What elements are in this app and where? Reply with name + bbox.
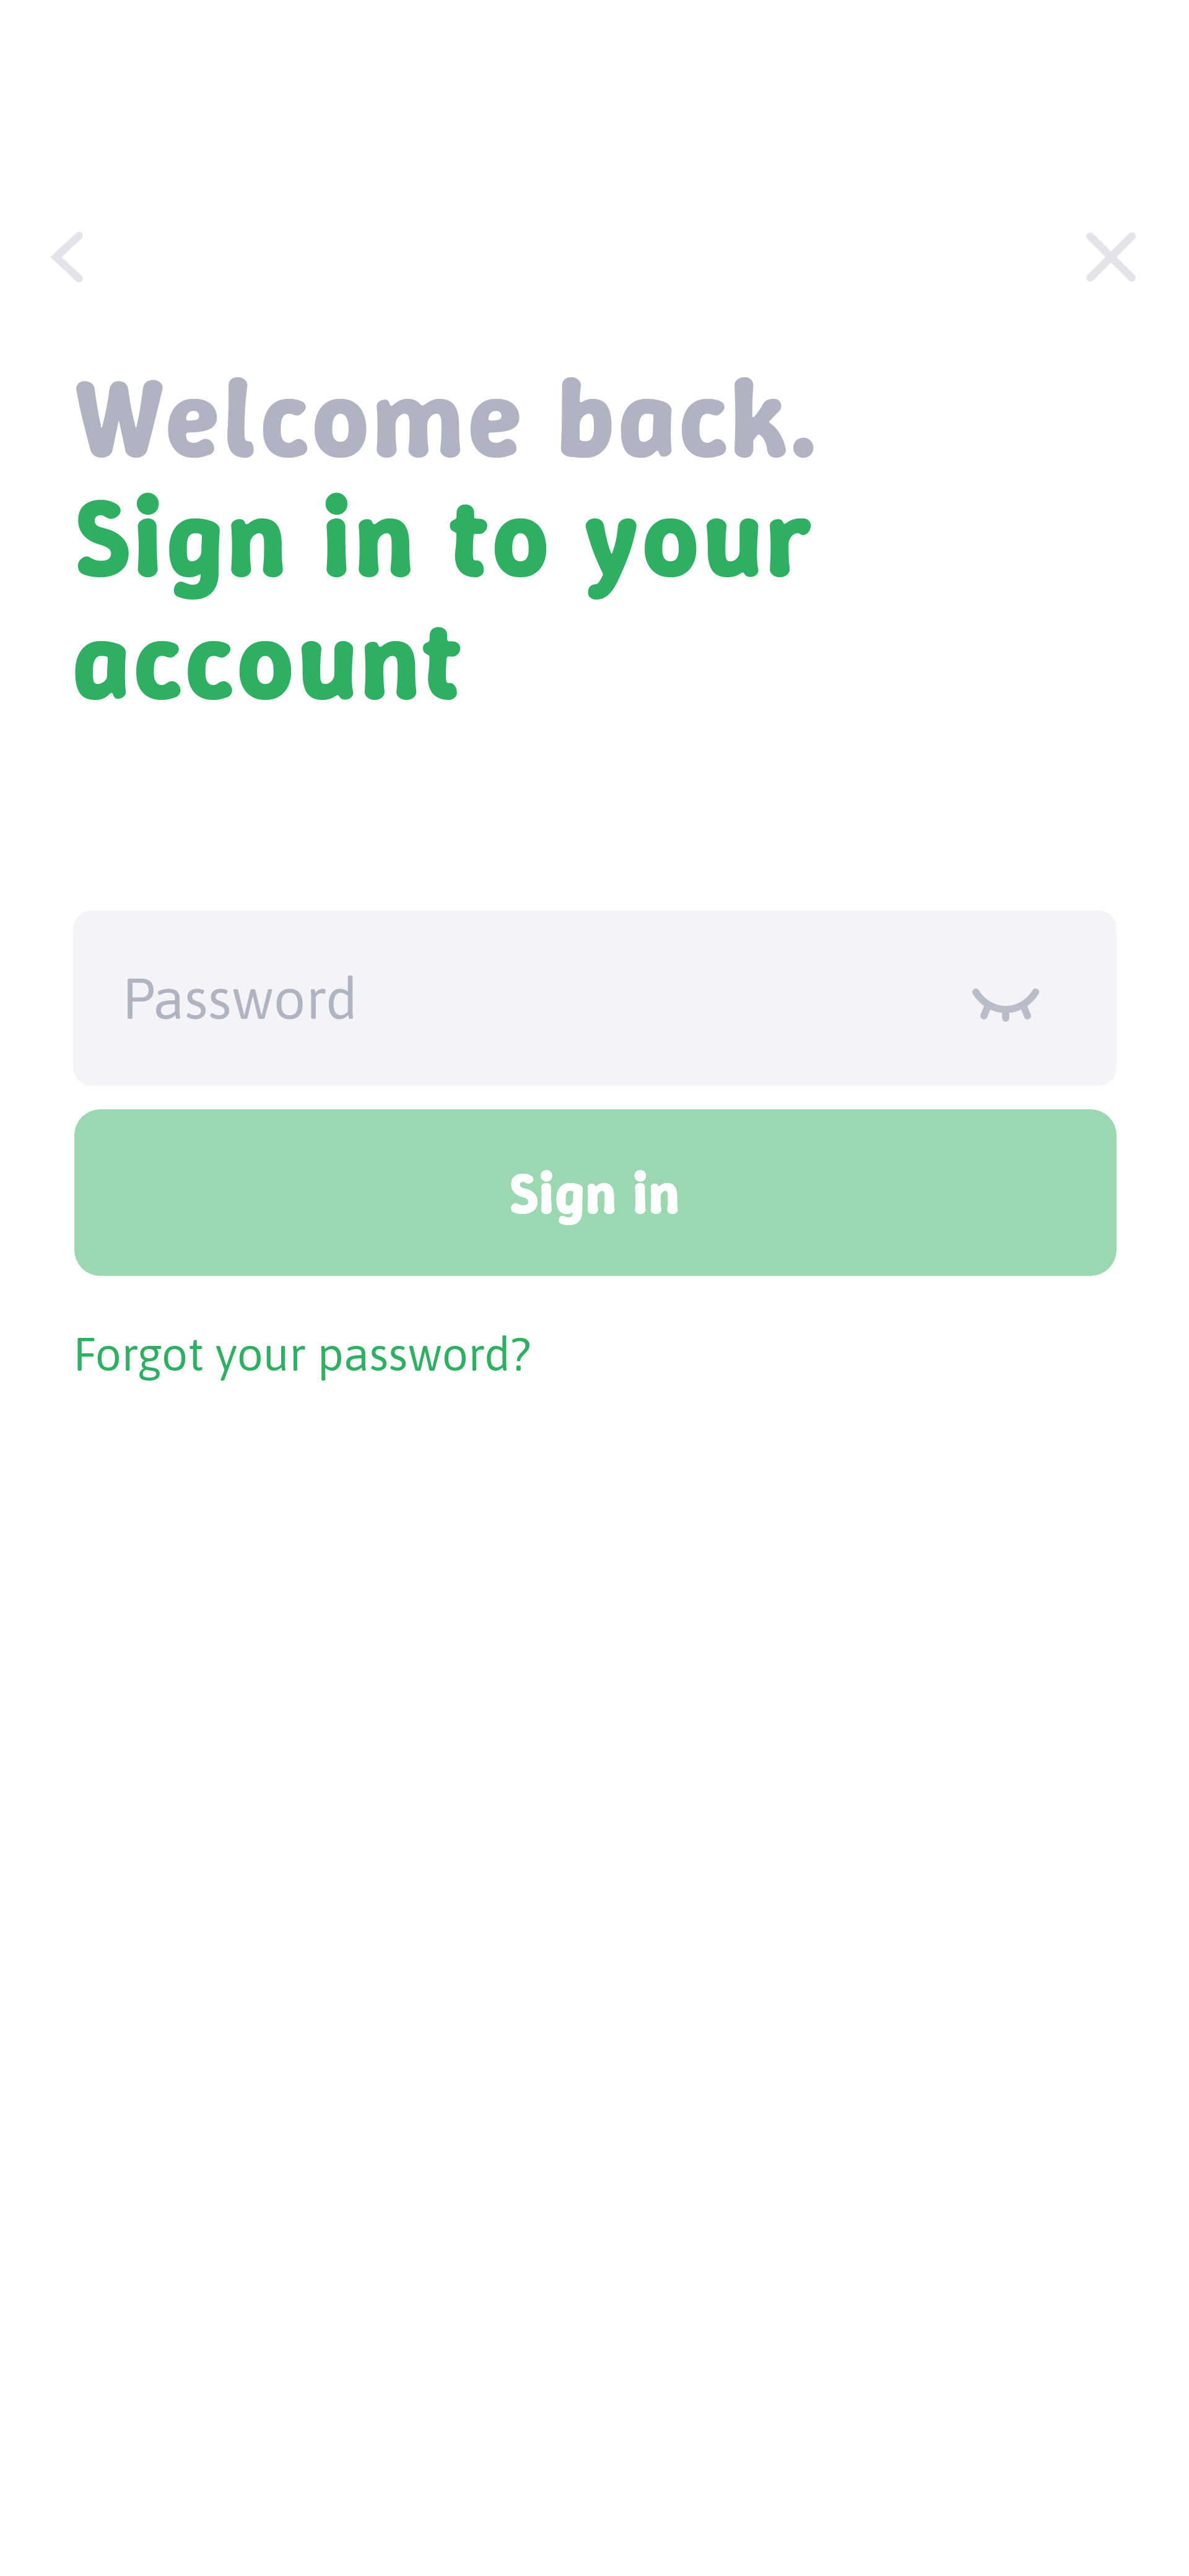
staticText: Sign in [511, 1155, 681, 1231]
button[interactable]: Forgot your password? [73, 1327, 531, 1381]
staticText: account [72, 587, 465, 732]
button[interactable]: Sign in [74, 1109, 1117, 1276]
staticText: Sign in to your [77, 464, 816, 609]
staticText: Forgot your password? [73, 1327, 531, 1381]
button[interactable]: Close [1077, 223, 1145, 291]
staticText: Password [122, 966, 358, 1031]
staticText: Welcome back. [77, 344, 819, 490]
button[interactable]: Show password [962, 966, 1050, 1040]
button[interactable]: Password [73, 910, 1117, 1086]
button[interactable]: Back [33, 223, 102, 291]
